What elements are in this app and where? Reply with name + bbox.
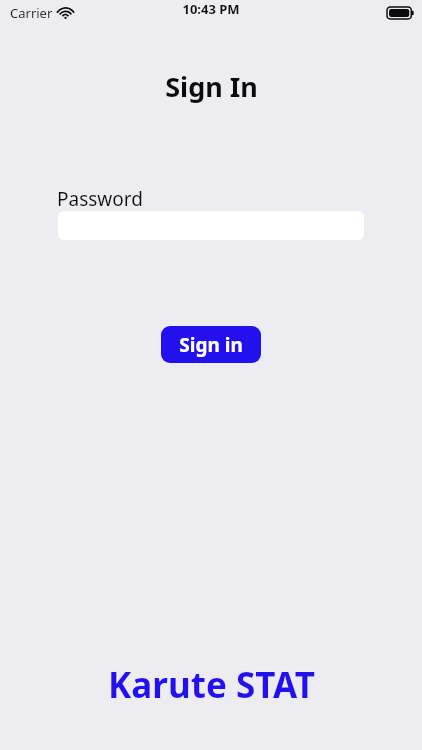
staticText: Sign in xyxy=(179,332,243,358)
staticText: Sign In xyxy=(165,68,258,105)
staticText: Password xyxy=(57,186,143,212)
staticText: Carrier xyxy=(10,4,53,22)
staticText: Karute STAT xyxy=(108,661,315,709)
staticText: 10:43 PM xyxy=(182,0,240,18)
button[interactable]: Sign in xyxy=(161,326,261,363)
